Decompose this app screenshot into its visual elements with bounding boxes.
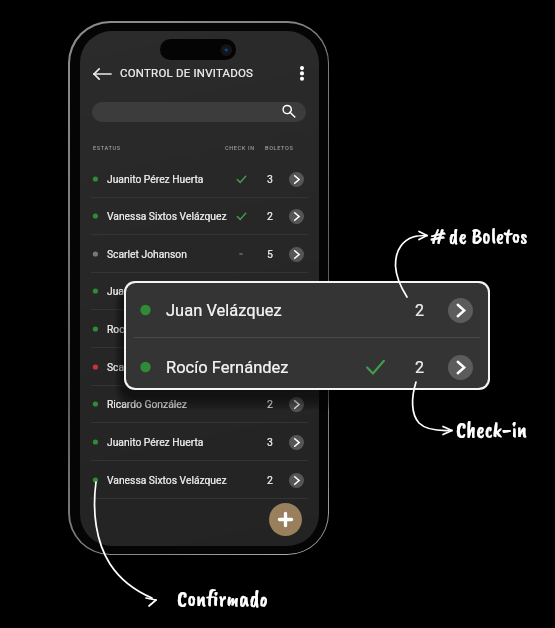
staticText: ESTATUS <box>93 145 121 152</box>
staticText: 2 <box>415 358 424 377</box>
button[interactable]: Open guest details <box>289 435 304 450</box>
staticText: Check-in <box>456 415 527 444</box>
button[interactable]: Open guest details <box>448 298 473 323</box>
button[interactable]: Open guest details <box>289 209 304 224</box>
staticText: 3 <box>267 436 273 448</box>
staticText: Confirmado <box>177 584 268 613</box>
button[interactable]: Vanessa Sixtos Velázquez <box>86 461 313 499</box>
staticText: BOLETOS <box>265 145 294 152</box>
staticText: 2 <box>267 210 273 222</box>
staticText: 2 <box>267 398 273 410</box>
button[interactable]: Juan Velázquez <box>86 272 313 310</box>
button[interactable]: Scarlet Johanson <box>86 348 313 386</box>
staticText: 2 <box>415 301 424 320</box>
button[interactable]: Juan Velázquez <box>126 284 488 336</box>
button[interactable]: Juanito Pérez Huerta <box>86 160 313 198</box>
staticText: 5 <box>267 248 273 260</box>
staticText: Juan Velázquez <box>107 285 180 297</box>
button[interactable]: Rocío Fernández <box>86 310 313 348</box>
button[interactable]: Scarlet Johanson <box>86 235 313 273</box>
staticText: 2 <box>267 474 273 486</box>
staticText: # de Boletos <box>432 222 528 250</box>
staticText: 5 <box>267 361 273 373</box>
staticText: Vanessa Sixtos Velázquez <box>107 210 227 222</box>
staticText: Vanessa Sixtos Velázquez <box>107 474 227 486</box>
staticText: Rocío Fernández <box>107 323 184 335</box>
staticText: 3 <box>267 173 273 185</box>
button[interactable]: Open guest details <box>289 172 304 187</box>
button[interactable]: Add guest <box>269 503 302 536</box>
button[interactable]: Open guest details <box>448 355 473 380</box>
staticText: Juanito Pérez Huerta <box>107 436 204 448</box>
staticText: Scarlet Johanson <box>107 361 187 373</box>
staticText: CONTROL DE INVITADOS <box>120 66 254 79</box>
button[interactable]: Ricardo González <box>86 385 313 423</box>
staticText: Juan Velázquez <box>166 301 282 320</box>
staticText: Scarlet Johanson <box>107 248 187 260</box>
button[interactable]: Juanito Pérez Huerta <box>86 423 313 461</box>
button[interactable]: Open guest details <box>289 397 304 412</box>
button[interactable]: Open guest details <box>289 473 304 488</box>
button[interactable]: Back <box>93 64 113 84</box>
button[interactable]: Search <box>92 102 306 122</box>
button[interactable]: Open guest details <box>289 247 304 262</box>
staticText: CHECK IN <box>225 145 255 152</box>
staticText: Rocío Fernández <box>166 358 289 377</box>
button[interactable]: Rocío Fernández <box>126 341 488 388</box>
button[interactable]: Vanessa Sixtos Velázquez <box>86 197 313 235</box>
button[interactable]: More options <box>294 61 310 77</box>
staticText: Ricardo González <box>107 398 187 410</box>
staticText: Juanito Pérez Huerta <box>107 173 204 185</box>
